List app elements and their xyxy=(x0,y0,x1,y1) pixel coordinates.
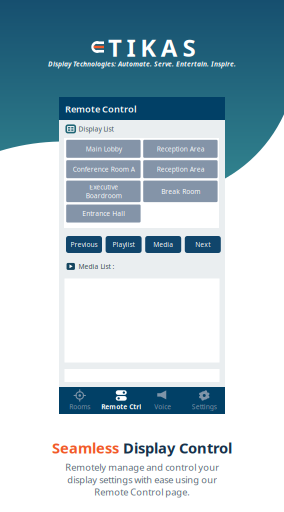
staticText: Previous xyxy=(70,240,97,249)
staticText: Display Control xyxy=(123,438,232,457)
button[interactable]: Remote Ctrl xyxy=(100,387,142,414)
button[interactable]: Playlist xyxy=(106,236,142,253)
button[interactable]: Previous xyxy=(66,236,102,253)
button[interactable]: Conference Room A xyxy=(66,160,141,178)
staticText: TIKAS xyxy=(108,32,195,63)
button[interactable]: Voice xyxy=(142,387,183,414)
staticText: Break Room xyxy=(161,187,200,196)
staticText: Entrance Hall xyxy=(82,209,125,218)
staticText: Executive Boardroom xyxy=(85,182,121,200)
button[interactable]: Reception Area xyxy=(143,160,218,178)
staticText: Media List : xyxy=(78,262,114,271)
button[interactable]: Main Lobby xyxy=(66,140,141,158)
staticText: Remote Control xyxy=(65,103,137,115)
staticText: Playlist xyxy=(113,240,135,249)
button[interactable]: Reception Area xyxy=(143,140,218,158)
staticText: Rooms xyxy=(69,402,90,411)
button[interactable]: Settings xyxy=(183,387,225,414)
staticText: Main Lobby xyxy=(85,144,121,153)
staticText: Media xyxy=(153,240,173,249)
button[interactable]: Next xyxy=(185,236,221,253)
staticText: Voice xyxy=(154,402,171,411)
button[interactable]: Rooms xyxy=(59,387,100,414)
button[interactable]: Media xyxy=(145,236,181,253)
staticText: Reception Area xyxy=(156,144,204,153)
staticText: Conference Room A xyxy=(72,165,134,174)
staticText: Reception Area xyxy=(156,165,204,174)
staticText: Display Technologies: Automate. Serve. E… xyxy=(48,60,236,68)
staticText: Next xyxy=(195,240,210,249)
staticText: Remotely manage and control your display… xyxy=(65,461,219,498)
button[interactable]: Executive Boardroom xyxy=(66,181,141,202)
button[interactable]: Break Room xyxy=(143,181,218,202)
staticText: Seamless xyxy=(52,438,119,457)
staticText: Display List xyxy=(78,124,113,133)
staticText: Settings xyxy=(192,402,217,411)
staticText: Remote Ctrl xyxy=(101,402,141,411)
button[interactable]: Entrance Hall xyxy=(66,204,141,222)
